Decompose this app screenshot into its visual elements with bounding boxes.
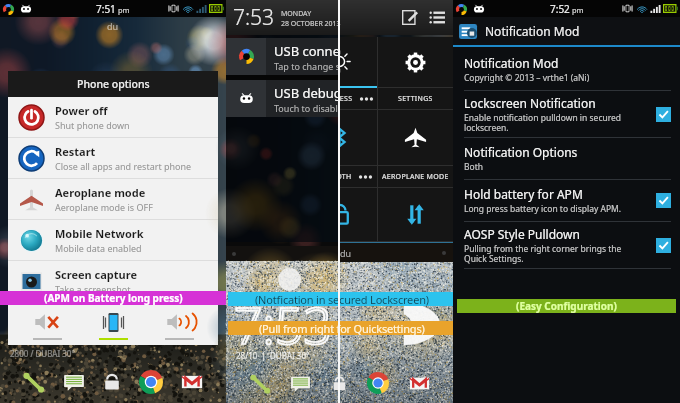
staticText: AEROPLANE MODE [382,172,449,182]
button[interactable]: AEROPLANE MODE [378,110,453,188]
button[interactable]: BLUETOOTH [302,110,377,188]
staticText: Long press battery icon to display APM. [464,203,622,215]
button[interactable]: Edit [401,9,418,26]
staticText: Notification Options [464,144,578,160]
staticText: 28 OCTOBER 2013 [281,19,341,29]
button[interactable]: Hold battery for APM [453,180,680,221]
button[interactable]: Notification list [429,9,446,26]
button[interactable] [302,188,377,242]
staticText: (Notfication in secured Lockscreen) [255,292,429,306]
staticText: 2800 / DUBAI 30° [10,348,75,359]
staticText: Close all apps and restart phone [55,160,192,172]
button[interactable]: Notification Mod [453,17,680,45]
staticText: AOSP Style Pulldown [464,226,580,242]
staticText: (APM on Battery long press) [44,291,183,305]
staticText: 28/10 | DUBAI 30° [236,350,310,361]
staticText: SETTINGS [398,94,433,104]
staticText: Mobile data enabled [55,242,142,254]
button[interactable]: Lockscreen Notification [656,107,671,122]
staticText: Enable notification pulldown in secured … [464,112,622,134]
staticText: Take a screenshot [55,283,131,295]
staticText: Notification Mod [485,23,580,39]
staticText: (Pull from right for Quicksettings) [259,321,425,335]
button[interactable]: Ring mode [146,309,212,340]
staticText: pm [118,5,130,15]
button[interactable]: Restart [8,138,218,178]
staticText: pm [572,5,584,15]
button[interactable] [378,188,453,242]
button[interactable]: AOSP Style Pulldown [453,222,680,268]
staticText: Touch to disabl [274,102,338,114]
staticText: Phone options [77,77,150,91]
staticText: USB debugg [274,84,350,102]
button[interactable] [226,188,301,242]
staticText: Both [464,161,483,173]
button[interactable]: Notification Mod [453,49,680,90]
button[interactable]: USB debugg [226,80,453,117]
staticText: Copyright © 2013 – vrthe1 (aNi) [464,72,590,84]
button[interactable]: BRIGHTNESS [302,37,377,110]
staticText: BRIGHTNESS [307,94,353,104]
staticText: du [107,20,119,32]
button[interactable]: AOSP Style Pulldown [656,238,671,253]
staticText: 7:51 [96,2,116,16]
button[interactable]: SETTINGS [378,37,453,110]
staticText: Power off [55,103,108,118]
staticText: Restart [55,144,96,159]
button[interactable]: Screen capture [8,261,218,301]
staticText: Pulling from the right corner brings the… [464,243,622,265]
staticText: Aeroplane mode [55,185,146,200]
staticText: du [340,247,352,259]
staticText: Aeroplane mode is OFF [55,201,153,213]
staticText: Lockscreen Notification [464,95,596,111]
staticText: Screen capture [55,267,137,282]
staticText: WIFI [245,94,262,104]
button[interactable]: (Easy Configuration) [457,299,676,313]
staticText: 7:53 [234,291,332,359]
button[interactable]: Notification Options [453,138,680,179]
staticText: 7:52 [550,2,570,16]
button[interactable]: USB connect [226,38,453,75]
staticText: BLUETOOTH [308,172,352,182]
staticText: BATTERY [248,172,279,182]
staticText: MONDAY [281,9,312,19]
button[interactable]: Lockscreen Notification [453,91,680,137]
button[interactable]: Vibrate mode [80,310,146,340]
button[interactable]: Silent mode [14,309,80,340]
button[interactable]: Aeroplane mode [8,179,218,219]
button[interactable]: WIFI [226,37,301,110]
staticText: (Easy Configuration) [516,299,617,313]
staticText: Notification Mod [464,55,559,71]
staticText: USB connect [274,42,351,60]
staticText: Mobile Network [55,226,144,241]
button[interactable]: Mobile Network [8,220,218,260]
button[interactable]: BATTERY [226,110,301,188]
button[interactable]: Hold battery for APM [656,193,671,208]
staticText: Hold battery for APM [464,186,583,202]
staticText: Tap to change s [274,60,340,72]
staticText: Shut phone down [55,119,130,131]
staticText: 7:53 [233,3,275,32]
button[interactable]: Power off [8,97,218,137]
